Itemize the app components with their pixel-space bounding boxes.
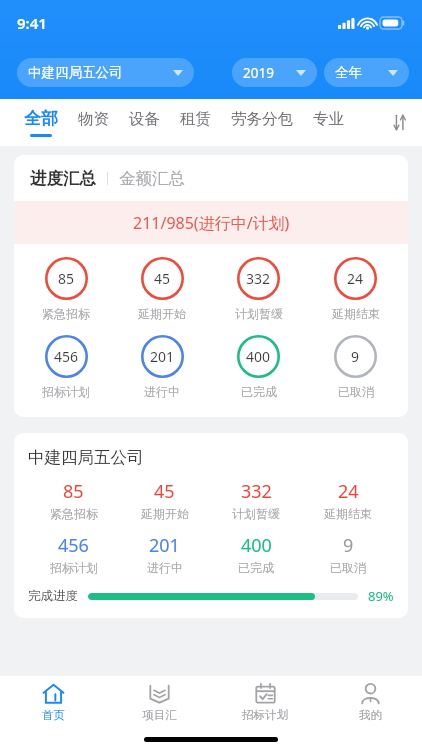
- staticText: 已取消: [338, 384, 374, 399]
- button[interactable]: 专业: [303, 99, 354, 146]
- staticText: 9:41: [17, 13, 47, 33]
- staticText: 延期开始: [141, 506, 189, 521]
- staticText: 计划暂缓: [235, 306, 283, 321]
- staticText: 设备: [129, 109, 160, 129]
- staticText: 中建四局五公司: [28, 447, 144, 468]
- button[interactable]: 456: [28, 533, 119, 575]
- staticText: 45: [154, 479, 175, 504]
- staticText: 完成进度: [28, 588, 78, 604]
- button[interactable]: 45: [141, 257, 184, 300]
- button[interactable]: 332: [210, 479, 302, 521]
- staticText: 进度汇总: [30, 168, 96, 189]
- button[interactable]: Sort: [376, 99, 422, 146]
- button[interactable]: 招标计划: [212, 676, 318, 728]
- staticText: 进行中: [147, 560, 183, 575]
- staticText: 进行中: [144, 384, 180, 399]
- button[interactable]: 45: [119, 479, 210, 521]
- staticText: 紧急招标: [50, 506, 98, 521]
- staticText: 24: [338, 479, 359, 504]
- staticText: 中建四局五公司: [28, 64, 123, 81]
- button[interactable]: 我的: [318, 676, 422, 728]
- staticText: 2019: [243, 64, 274, 82]
- button[interactable]: 全部: [14, 99, 68, 146]
- staticText: 45: [154, 269, 171, 288]
- button[interactable]: 全年: [324, 58, 409, 87]
- staticText: 紧急招标: [42, 306, 90, 321]
- staticText: 全年: [335, 64, 362, 81]
- staticText: 211/985(进行中/计划): [133, 212, 290, 234]
- button[interactable]: 劳务分包: [221, 99, 303, 146]
- staticText: 专业: [313, 109, 344, 129]
- button[interactable]: 400: [237, 335, 280, 378]
- button[interactable]: 租赁: [170, 99, 221, 146]
- button[interactable]: 201: [141, 335, 184, 378]
- staticText: 项目汇: [142, 708, 177, 722]
- staticText: 我的: [359, 708, 382, 722]
- staticText: 已完成: [241, 384, 277, 399]
- button[interactable]: 332: [237, 257, 280, 300]
- staticText: 延期结束: [324, 506, 372, 521]
- staticText: 招标计划: [50, 560, 98, 575]
- button[interactable]: 首页: [0, 676, 106, 728]
- staticText: 456: [58, 533, 89, 558]
- staticText: 全部: [24, 108, 58, 129]
- button[interactable]: 2019: [232, 58, 317, 87]
- button[interactable]: 中建四局五公司: [17, 58, 194, 87]
- button[interactable]: 201: [119, 533, 210, 575]
- button[interactable]: 24: [334, 257, 377, 300]
- staticText: 400: [241, 533, 272, 558]
- button[interactable]: 400: [210, 533, 302, 575]
- staticText: 招标计划: [42, 384, 90, 399]
- button[interactable]: 24: [302, 479, 394, 521]
- staticText: 延期开始: [138, 306, 186, 321]
- staticText: 首页: [42, 708, 65, 722]
- staticText: 24: [347, 269, 364, 288]
- staticText: 劳务分包: [231, 109, 293, 129]
- staticText: 85: [63, 479, 84, 504]
- button[interactable]: 9: [334, 335, 377, 378]
- button[interactable]: 85: [28, 479, 119, 521]
- button[interactable]: 进度汇总: [30, 168, 96, 189]
- staticText: 332: [241, 479, 272, 504]
- staticText: 招标计划: [242, 708, 288, 722]
- button[interactable]: 456: [45, 335, 88, 378]
- button[interactable]: 金额汇总: [119, 168, 185, 189]
- button[interactable]: 9: [302, 533, 394, 575]
- staticText: 85: [58, 269, 75, 288]
- staticText: 332: [246, 269, 271, 288]
- staticText: 89%: [368, 587, 394, 605]
- staticText: 201: [150, 347, 175, 366]
- staticText: 已取消: [330, 560, 366, 575]
- button[interactable]: 项目汇: [106, 676, 212, 728]
- staticText: 456: [54, 347, 79, 366]
- staticText: 9: [343, 533, 354, 558]
- staticText: 租赁: [180, 109, 211, 129]
- button[interactable]: 物资: [68, 99, 119, 146]
- button[interactable]: 设备: [119, 99, 170, 146]
- staticText: 201: [149, 533, 180, 558]
- staticText: 金额汇总: [119, 168, 185, 189]
- staticText: 400: [246, 347, 271, 366]
- staticText: 物资: [78, 109, 109, 129]
- staticText: 计划暂缓: [232, 506, 280, 521]
- staticText: 已完成: [238, 560, 274, 575]
- staticText: 延期结束: [332, 306, 380, 321]
- staticText: 9: [351, 347, 360, 366]
- button[interactable]: 中建四局五公司: [14, 433, 408, 618]
- button[interactable]: 85: [45, 257, 88, 300]
